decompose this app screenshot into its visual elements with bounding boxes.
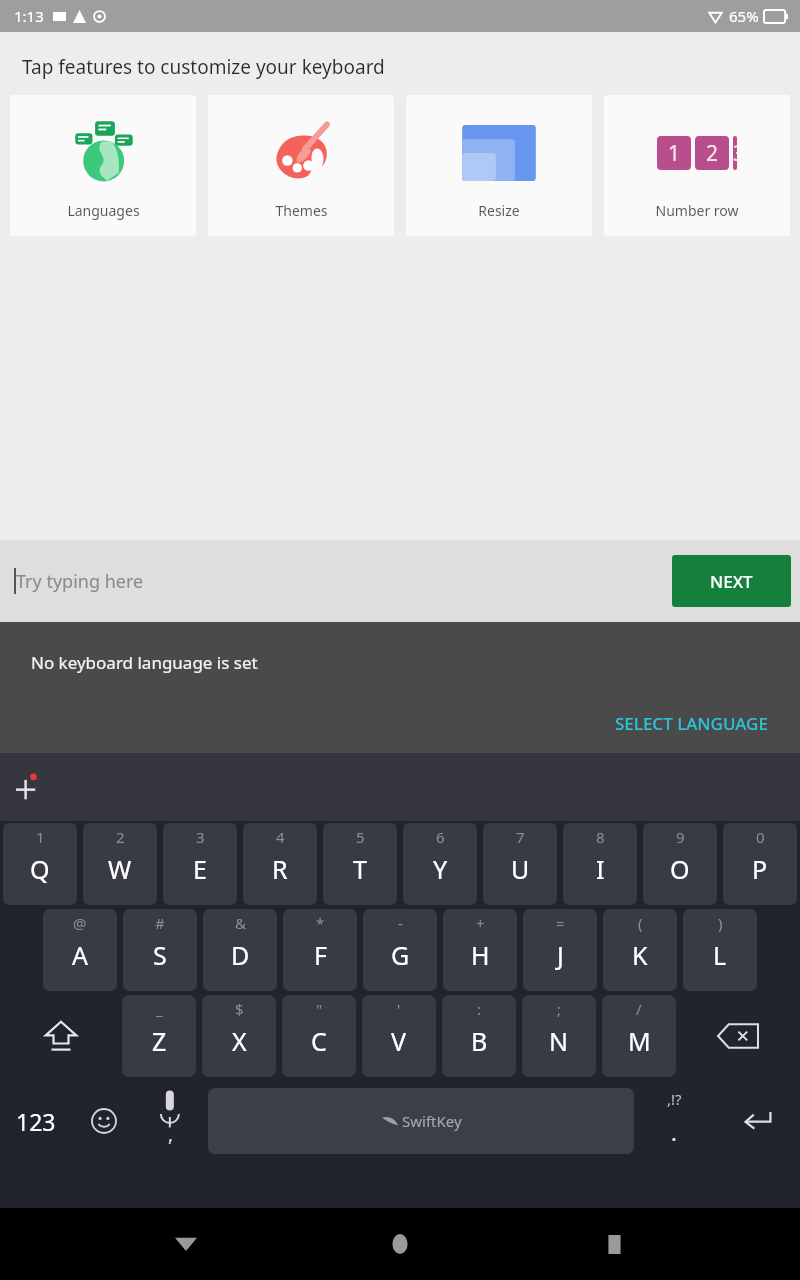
- staticText: @: [73, 913, 87, 933]
- staticText: B: [471, 1024, 488, 1058]
- button[interactable]: /: [602, 995, 676, 1077]
- staticText: 1: [668, 139, 681, 168]
- button[interactable]: $: [202, 995, 276, 1077]
- button[interactable]: Add toolbar item: [8, 765, 52, 809]
- button[interactable]: 1: [604, 95, 790, 236]
- button[interactable]: 0: [723, 823, 797, 905]
- staticText: ': [397, 999, 401, 1019]
- staticText: ;: [557, 999, 562, 1019]
- button[interactable]: 1: [3, 823, 77, 905]
- staticText: Try typing here: [16, 569, 144, 594]
- button[interactable]: 5: [323, 823, 397, 905]
- staticText: SELECT LANGUAGE: [615, 712, 768, 735]
- button[interactable]: -: [363, 909, 437, 991]
- button[interactable]: ,!?: [634, 1081, 714, 1161]
- staticText: M: [628, 1024, 651, 1058]
- staticText: Languages: [67, 201, 140, 220]
- staticText: Number row: [655, 201, 739, 220]
- staticText: J: [557, 938, 564, 972]
- button[interactable]: 123: [0, 1081, 72, 1161]
- staticText: V: [391, 1024, 407, 1058]
- button[interactable]: :: [442, 995, 516, 1077]
- button[interactable]: +: [443, 909, 517, 991]
- button[interactable]: Languages: [10, 95, 196, 236]
- staticText: F: [314, 938, 327, 972]
- button[interactable]: NEXT: [672, 555, 791, 607]
- staticText: G: [391, 938, 410, 972]
- staticText: &: [235, 913, 246, 933]
- button[interactable]: &: [203, 909, 277, 991]
- staticText: ,: [168, 1121, 174, 1147]
- staticText: Y: [433, 852, 448, 886]
- button[interactable]: Enter: [714, 1081, 800, 1161]
- staticText: 5: [356, 827, 365, 847]
- button[interactable]: 6: [403, 823, 477, 905]
- staticText: (: [638, 913, 643, 933]
- button[interactable]: 9: [643, 823, 717, 905]
- staticText: ,!?: [667, 1089, 682, 1109]
- staticText: *: [316, 913, 325, 933]
- staticText: 7: [516, 827, 525, 847]
- button[interactable]: 8: [563, 823, 637, 905]
- button[interactable]: Voice input: [136, 1081, 208, 1161]
- button[interactable]: SELECT LANGUAGE: [601, 702, 782, 745]
- staticText: 123: [16, 1106, 56, 1137]
- staticText: S: [153, 938, 167, 972]
- staticText: H: [471, 938, 490, 972]
- button[interactable]: Emoji: [72, 1081, 136, 1161]
- button[interactable]: ;: [522, 995, 596, 1077]
- staticText: 65%: [729, 6, 759, 26]
- staticText: 0: [756, 827, 765, 847]
- button[interactable]: 2: [83, 823, 157, 905]
- staticText: N: [549, 1024, 569, 1058]
- staticText: +: [476, 913, 485, 933]
- staticText: 2: [706, 139, 719, 168]
- staticText: C: [311, 1024, 327, 1058]
- button[interactable]: Backspace: [676, 995, 800, 1077]
- staticText: Tap features to customize your keyboard: [22, 54, 385, 80]
- button[interactable]: =: [523, 909, 597, 991]
- button[interactable]: Home: [372, 1216, 428, 1272]
- button[interactable]: ): [683, 909, 757, 991]
- staticText: R: [272, 852, 288, 886]
- staticText: ): [718, 913, 723, 933]
- staticText: ": [316, 999, 323, 1019]
- staticText: 2: [116, 827, 125, 847]
- button[interactable]: Back: [158, 1216, 214, 1272]
- button[interactable]: Recents: [586, 1216, 642, 1272]
- staticText: Q: [30, 852, 50, 886]
- staticText: P: [752, 852, 768, 886]
- button[interactable]: 3: [163, 823, 237, 905]
- button[interactable]: *: [283, 909, 357, 991]
- staticText: O: [670, 852, 690, 886]
- button[interactable]: (: [603, 909, 677, 991]
- staticText: K: [632, 938, 648, 972]
- button[interactable]: ': [362, 995, 436, 1077]
- staticText: $: [235, 999, 244, 1019]
- staticText: 3: [733, 139, 737, 168]
- staticText: No keyboard language is set: [31, 651, 258, 674]
- staticText: U: [511, 852, 530, 886]
- button[interactable]: _: [122, 995, 196, 1077]
- button[interactable]: 4: [243, 823, 317, 905]
- staticText: SwiftKey: [402, 1111, 462, 1131]
- staticText: I: [596, 852, 605, 886]
- staticText: 6: [436, 827, 445, 847]
- staticText: 8: [596, 827, 605, 847]
- staticText: -: [398, 913, 403, 933]
- button[interactable]: Space: [208, 1088, 634, 1154]
- staticText: T: [353, 852, 367, 886]
- button[interactable]: @: [43, 909, 117, 991]
- button[interactable]: ": [282, 995, 356, 1077]
- button[interactable]: #: [123, 909, 197, 991]
- staticText: Z: [152, 1024, 167, 1058]
- button[interactable]: Themes: [208, 95, 394, 236]
- button[interactable]: Shift: [0, 995, 122, 1077]
- button[interactable]: 7: [483, 823, 557, 905]
- staticText: Resize: [478, 201, 520, 220]
- staticText: W: [108, 852, 132, 886]
- button[interactable]: Resize: [406, 95, 592, 236]
- staticText: =: [556, 913, 565, 933]
- staticText: E: [193, 852, 207, 886]
- staticText: #: [155, 913, 165, 933]
